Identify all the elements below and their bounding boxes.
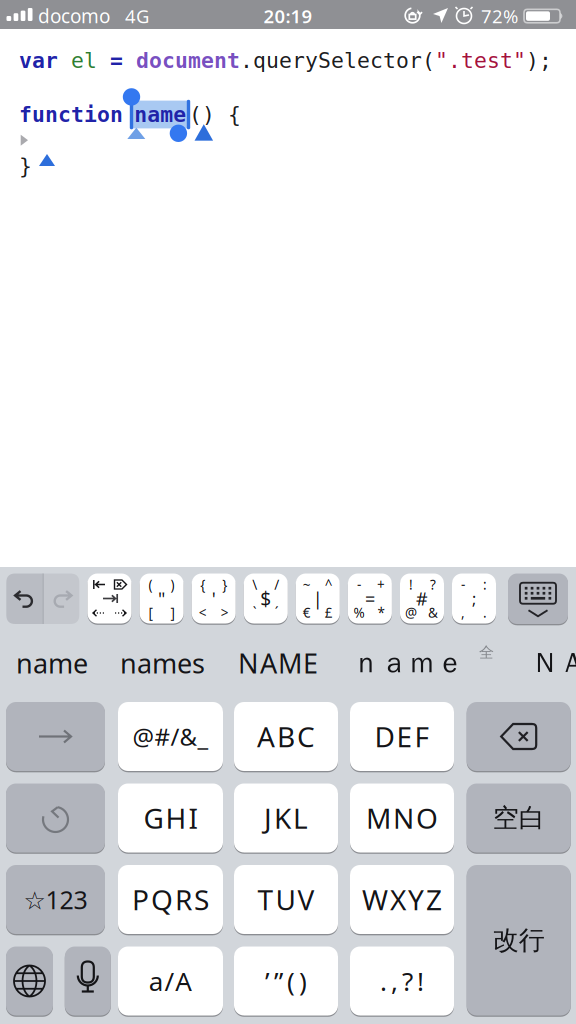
button[interactable]: $ <box>244 573 288 623</box>
staticText: £ <box>325 603 333 622</box>
staticText: ] <box>171 603 175 622</box>
button[interactable]: @#/&_ <box>118 702 223 771</box>
staticText: JKL <box>264 799 308 837</box>
staticText: PQRS <box>132 880 209 918</box>
staticText: WXYZ <box>362 880 442 918</box>
staticText: document <box>136 48 240 73</box>
staticText: 20:19 <box>263 3 312 29</box>
staticText: docomo <box>38 3 110 29</box>
staticText: . <box>483 603 487 622</box>
staticText: { <box>200 575 205 594</box>
button[interactable]: Undo <box>13 587 36 610</box>
staticText: ☆123 <box>23 882 87 916</box>
staticText: @ <box>405 603 417 622</box>
staticText: ' <box>212 586 216 611</box>
staticText: [ <box>149 603 153 622</box>
staticText: . , ? ! <box>380 963 424 999</box>
button[interactable]: ' <box>192 573 236 623</box>
button[interactable]: | <box>296 573 340 623</box>
staticText: a/A <box>149 963 192 999</box>
staticText: ? <box>430 575 436 594</box>
button[interactable]: Undo <box>6 783 105 852</box>
button[interactable]: ’ ” ( ) <box>234 946 338 1015</box>
staticText: ` <box>253 603 257 622</box>
button[interactable]: a/A <box>118 946 223 1015</box>
staticText: 空白 <box>493 802 545 834</box>
staticText: ´ <box>275 603 279 622</box>
staticText: = <box>365 586 375 611</box>
staticText: % <box>353 603 364 622</box>
staticText: , <box>461 603 465 622</box>
button[interactable]: Dictation <box>65 946 111 1015</box>
staticText: ~ <box>303 575 311 594</box>
staticText: 全 <box>479 643 494 662</box>
button[interactable]: ＮＡ <box>531 624 576 702</box>
button[interactable]: Dismiss keyboard <box>508 573 568 624</box>
button[interactable]: 空白 <box>467 783 571 852</box>
staticText: " <box>158 586 165 611</box>
button[interactable]: Delete <box>467 702 571 771</box>
staticText: ｎａｍｅ <box>352 645 464 681</box>
button[interactable]: Move cursor <box>6 702 105 771</box>
button[interactable]: ; <box>452 573 496 623</box>
staticText: \ <box>252 575 257 594</box>
staticText: € <box>303 603 311 622</box>
staticText: ); <box>526 48 552 73</box>
button[interactable]: NAME <box>238 624 318 702</box>
button[interactable]: DEF <box>350 702 454 771</box>
staticText: } <box>222 575 227 594</box>
staticText: 4G <box>125 3 149 29</box>
button[interactable]: name <box>16 624 88 702</box>
button[interactable]: # <box>400 573 444 623</box>
button[interactable]: JKL <box>234 783 338 852</box>
staticText: name <box>16 645 88 681</box>
staticText: @#/&_ <box>132 720 208 753</box>
staticText: # <box>416 586 428 611</box>
button[interactable]: Next keyboard <box>6 946 53 1015</box>
staticText: .querySelector( <box>240 48 435 73</box>
button[interactable]: Tab <box>87 573 131 623</box>
staticText: ( <box>149 575 153 594</box>
staticText: > <box>221 603 229 622</box>
staticText: : <box>483 575 487 594</box>
staticText: ABC <box>257 717 315 755</box>
button[interactable]: ☆123 <box>6 865 105 934</box>
staticText: var <box>19 48 71 73</box>
staticText: () { <box>189 102 241 127</box>
staticText: 72% <box>481 3 518 29</box>
button[interactable]: " <box>140 573 184 623</box>
staticText: NAME <box>238 645 318 681</box>
staticText: $ <box>260 586 271 611</box>
staticText: ; <box>472 588 476 609</box>
staticText: - <box>357 575 361 594</box>
staticText: el <box>71 48 110 73</box>
button[interactable]: = <box>348 573 392 623</box>
staticText: name <box>134 102 186 127</box>
button[interactable]: TUV <box>234 865 338 934</box>
staticText: < <box>199 603 207 622</box>
staticText: ".test" <box>435 48 526 73</box>
staticText: 改行 <box>493 924 545 957</box>
staticText: DEF <box>374 717 429 755</box>
staticText: - <box>461 575 465 594</box>
staticText: MNO <box>366 799 438 837</box>
button[interactable]: MNO <box>350 783 454 852</box>
button[interactable]: Redo <box>50 587 73 610</box>
staticText: * <box>377 603 384 622</box>
button[interactable]: ｎａｍｅ <box>352 624 464 702</box>
staticText: function <box>19 102 123 127</box>
button[interactable]: . , ? ! <box>350 946 454 1015</box>
staticText: | <box>313 586 323 611</box>
button[interactable]: GHI <box>118 783 223 852</box>
staticText: ’ ” ( ) <box>265 963 307 999</box>
staticText: ) <box>171 575 175 594</box>
staticText: ^ <box>325 575 333 594</box>
button[interactable]: ABC <box>234 702 338 771</box>
staticText: & <box>428 603 438 622</box>
button[interactable]: PQRS <box>118 865 223 934</box>
staticText: names <box>120 645 205 681</box>
button[interactable]: names <box>120 624 205 702</box>
staticText: GHI <box>143 799 197 837</box>
button[interactable]: WXYZ <box>350 865 454 934</box>
button[interactable]: 改行 <box>467 865 571 1015</box>
